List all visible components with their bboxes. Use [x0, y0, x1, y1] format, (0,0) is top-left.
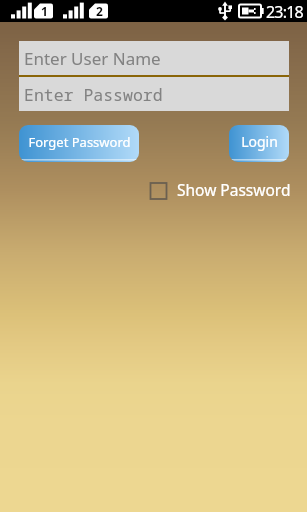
staticText: Forget Password: [28, 133, 131, 151]
staticText: Login: [241, 132, 278, 151]
button[interactable]: Enter Password: [19, 77, 289, 111]
button[interactable]: Login: [229, 125, 289, 162]
staticText: 23:18: [266, 1, 303, 23]
button[interactable]: Show Password: [149, 180, 291, 201]
staticText: 2: [96, 3, 103, 19]
staticText: Enter Password: [24, 83, 163, 105]
staticText: 1: [41, 3, 48, 19]
other: Status bar: [0, 0, 307, 22]
button[interactable]: Forget Password: [19, 125, 139, 162]
staticText: Enter User Name: [24, 47, 161, 70]
staticText: Show Password: [177, 179, 291, 200]
button[interactable]: Enter User Name: [19, 41, 289, 75]
